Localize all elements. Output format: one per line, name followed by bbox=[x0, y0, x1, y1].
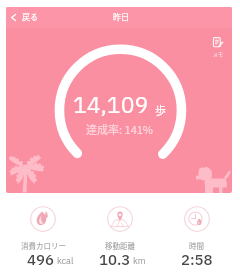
staticText: 移動距離 bbox=[105, 240, 135, 251]
button[interactable]: 戻る bbox=[6, 9, 46, 25]
staticText: 消費カロリー bbox=[21, 240, 66, 251]
staticText: 14,109 bbox=[73, 89, 149, 119]
staticText: 戻る bbox=[22, 11, 38, 23]
button[interactable]: 消費カロリー bbox=[5, 206, 81, 271]
button[interactable]: 時間 bbox=[158, 206, 235, 271]
staticText: メモ bbox=[213, 50, 224, 57]
button[interactable]: 移動距離 bbox=[81, 206, 158, 271]
staticText: 達成率: 141% bbox=[86, 121, 153, 137]
staticText: 2:58 bbox=[181, 250, 213, 270]
staticText: 496 bbox=[27, 250, 55, 270]
staticText: km bbox=[133, 255, 146, 267]
staticText: 歩 bbox=[155, 102, 166, 118]
button[interactable]: Edit note bbox=[208, 37, 228, 59]
staticText: 昨日 bbox=[113, 11, 129, 23]
staticText: 時間 bbox=[189, 240, 204, 251]
staticText: kcal bbox=[57, 255, 74, 267]
staticText: 10.3 bbox=[99, 250, 131, 270]
